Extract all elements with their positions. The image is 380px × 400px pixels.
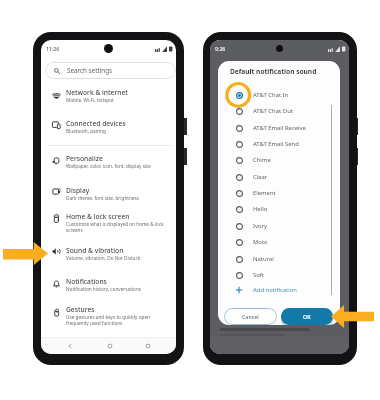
button[interactable]: Chime	[218, 152, 340, 168]
staticText: Bluetooth, pairing	[66, 128, 106, 134]
staticText: Network & internet	[66, 88, 128, 97]
staticText: Home & lock screen	[66, 212, 130, 221]
staticText: Soft	[253, 271, 264, 279]
button[interactable]: Hello	[218, 201, 340, 217]
button[interactable]: AT&T Email Send	[218, 136, 340, 152]
button[interactable]: AT&T Chat In	[218, 87, 340, 103]
staticText: Personalize	[66, 154, 103, 163]
button[interactable]: Sound & vibration	[43, 242, 176, 267]
button[interactable]: Home & lock screen	[43, 208, 176, 233]
button[interactable]: Back	[62, 337, 78, 354]
staticText: Gestures	[66, 305, 95, 314]
button[interactable]: Notifications	[43, 273, 176, 298]
staticText: Wallpaper, color, icon, font, display si…	[66, 163, 151, 169]
button[interactable]: Connected devices	[43, 115, 176, 140]
staticText: Moto	[253, 238, 268, 246]
staticText: AT&T Chat In	[253, 91, 289, 99]
staticText: Connected devices	[66, 119, 126, 128]
button[interactable]: Recent apps	[140, 337, 156, 354]
button[interactable]: Ivory	[218, 218, 340, 234]
button[interactable]: Soft	[218, 267, 340, 283]
staticText: OK	[303, 313, 311, 320]
button[interactable]: AT&T Email Receive	[218, 120, 340, 136]
button[interactable]: Element	[218, 185, 340, 201]
staticText: Use gestures and keys to quickly open	[66, 314, 150, 320]
staticText: Notifications	[66, 277, 107, 286]
button[interactable]: Home	[102, 337, 118, 354]
button[interactable]: Gestures	[43, 301, 176, 326]
staticText: Notification history, conversations	[66, 286, 142, 292]
button[interactable]: Natural	[218, 251, 340, 267]
button[interactable]: Personalize	[43, 150, 176, 175]
button[interactable]: OK	[281, 308, 333, 325]
button[interactable]: Cancel	[224, 308, 277, 325]
staticText: Display	[66, 186, 90, 195]
staticText: Sound & vibration	[66, 246, 124, 255]
staticText: Cancel	[242, 313, 259, 320]
button[interactable]: Search settings	[45, 62, 176, 79]
staticText: Dark theme, font size, brightness	[66, 195, 140, 201]
button[interactable]: AT&T Chat Out	[218, 103, 340, 119]
staticText: Volume, vibration, Do Not Disturb	[66, 255, 141, 261]
staticText: Chime	[253, 156, 271, 164]
staticText: 11:26	[46, 45, 60, 52]
staticText: Natural	[253, 255, 274, 263]
staticText: Mobile, Wi-Fi, hotspot	[66, 97, 114, 103]
staticText: AT&T Email Send	[253, 140, 299, 148]
staticText: frequently used functions	[66, 320, 123, 326]
staticText: Ivory	[253, 222, 267, 230]
staticText: 9:26	[215, 45, 226, 52]
staticText: Search settings	[67, 66, 113, 75]
staticText: screens	[66, 227, 83, 233]
staticText: Default notification sound	[230, 67, 317, 76]
button[interactable]: Moto	[218, 234, 340, 250]
staticText: Add notification	[253, 286, 297, 294]
staticText: AT&T Email Receive	[253, 124, 306, 132]
button[interactable]: Display	[43, 182, 176, 207]
staticText: AT&T Chat Out	[253, 107, 293, 115]
button[interactable]: Network & internet	[43, 84, 176, 109]
staticText: Hello	[253, 205, 268, 213]
button[interactable]: Add notification	[218, 282, 340, 298]
button[interactable]: Clear	[218, 169, 340, 185]
staticText: Customize what is displayed on home & lo…	[66, 221, 164, 227]
staticText: Element	[253, 189, 276, 197]
staticText: Clear	[253, 173, 268, 181]
